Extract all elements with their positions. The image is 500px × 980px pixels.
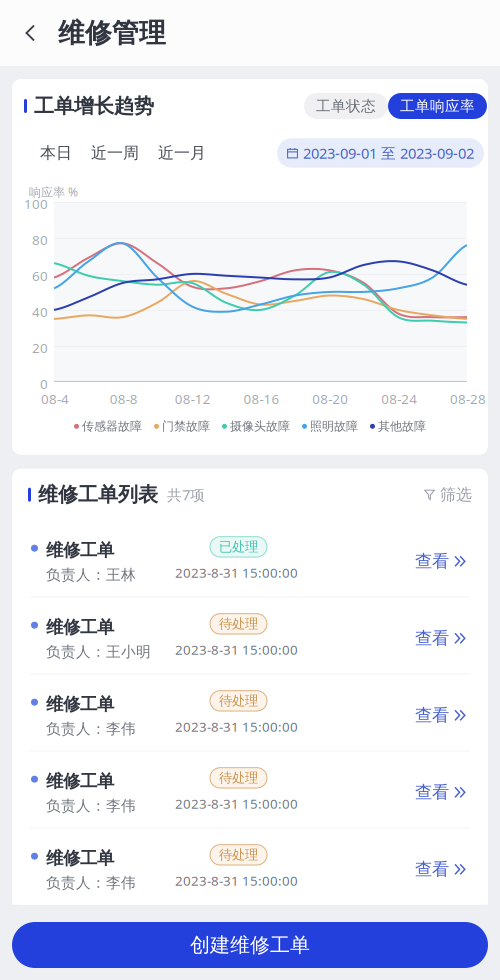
staticText: 2023-8-31 15:00:00 [175, 641, 298, 658]
staticText: 响应率 % [29, 184, 78, 200]
button[interactable]: Back [0, 0, 58, 66]
button[interactable]: 近一周 [91, 143, 158, 163]
staticText: 负责人：王小明 [46, 643, 151, 661]
staticText: 创建维修工单 [190, 933, 310, 957]
staticText: 待处理 [219, 770, 258, 786]
staticText: 门禁故障 [162, 419, 210, 434]
staticText: 查看 [415, 628, 449, 649]
staticText: 查看 [415, 859, 449, 880]
button[interactable]: 创建维修工单 [12, 922, 488, 968]
button[interactable]: 维修工单 [12, 675, 488, 751]
staticText: 近一月 [158, 143, 206, 163]
staticText: 100 [24, 195, 48, 213]
staticText: 已处理 [219, 539, 258, 555]
staticText: 工单增长趋势 [34, 94, 154, 118]
staticText: 工单状态 [316, 97, 376, 115]
staticText: 40 [32, 303, 48, 321]
button[interactable]: 维修工单 [12, 521, 488, 597]
staticText: 查看 [415, 705, 449, 726]
staticText: 08-4 [41, 390, 69, 408]
staticText: 摄像头故障 [230, 419, 290, 434]
button[interactable]: 工单响应率 [388, 93, 487, 119]
staticText: 2023-8-31 15:00:00 [175, 795, 298, 812]
staticText: 维修管理 [58, 17, 166, 49]
staticText: 负责人：李伟 [46, 720, 136, 738]
staticText: 维修工单 [46, 771, 114, 792]
button[interactable]: 筛选 [424, 485, 472, 504]
staticText: 维修工单 [46, 617, 114, 638]
button[interactable]: 2023-09-01 至 2023-09-02 [277, 138, 484, 168]
button[interactable]: 本日 [40, 143, 91, 163]
button[interactable]: 维修工单 [12, 598, 488, 674]
staticText: 08-24 [381, 390, 417, 408]
staticText: 维修工单 [46, 848, 114, 869]
staticText: 60 [32, 267, 48, 285]
staticText: 2023-8-31 15:00:00 [175, 564, 298, 581]
staticText: 查看 [415, 551, 449, 572]
staticText: 0 [40, 375, 48, 393]
staticText: 08-20 [312, 390, 348, 408]
staticText: 照明故障 [310, 419, 358, 434]
staticText: 08-16 [243, 390, 279, 408]
staticText: 查看 [415, 782, 449, 803]
staticText: 筛选 [440, 485, 472, 504]
staticText: 维修工单列表 [38, 482, 158, 507]
staticText: 待处理 [219, 616, 258, 632]
staticText: 本日 [40, 143, 72, 163]
staticText: 待处理 [219, 847, 258, 863]
staticText: 维修工单 [46, 694, 114, 715]
staticText: 2023-8-31 15:00:00 [175, 872, 298, 889]
button[interactable]: 维修工单 [12, 752, 488, 828]
staticText: 负责人：王林 [46, 566, 136, 584]
staticText: 待处理 [219, 693, 258, 709]
staticText: 负责人：李伟 [46, 874, 136, 892]
staticText: 近一周 [91, 143, 139, 163]
button[interactable]: 近一月 [158, 143, 206, 163]
button[interactable]: 工单状态 [304, 93, 388, 119]
staticText: 维修工单 [46, 540, 114, 561]
button[interactable]: 维修工单 [12, 829, 488, 905]
staticText: 共7项 [167, 485, 205, 504]
staticText: 传感器故障 [82, 419, 142, 434]
staticText: 08-28 [450, 390, 486, 408]
staticText: 2023-09-01 至 2023-09-02 [303, 143, 474, 163]
staticText: 2023-8-31 15:00:00 [175, 718, 298, 735]
staticText: 08-8 [110, 390, 138, 408]
staticText: 08-12 [175, 390, 211, 408]
staticText: 20 [32, 339, 48, 357]
staticText: 工单响应率 [400, 97, 475, 115]
staticText: 负责人：李伟 [46, 797, 136, 815]
staticText: 其他故障 [378, 419, 426, 434]
staticText: 80 [32, 231, 48, 249]
